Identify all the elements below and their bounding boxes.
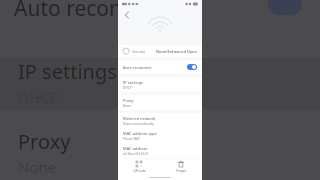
staticText: Forget <box>176 169 186 173</box>
staticText: None <box>123 104 132 108</box>
staticText: Auto reconnect <box>14 0 165 23</box>
staticText: Phone MAC <box>123 137 141 141</box>
staticText: MAC address <box>123 146 148 151</box>
button[interactable]: MAC address type <box>118 128 202 143</box>
staticText: DHCP <box>123 86 132 90</box>
staticText: Metered network <box>123 116 156 121</box>
staticText: MAC address type <box>123 131 157 136</box>
staticText: QR code <box>133 169 146 173</box>
staticText: Auto reconnect <box>123 65 152 70</box>
staticText: None <box>18 157 57 177</box>
staticText: IP settings <box>18 58 117 85</box>
staticText: b2:9a:ee:02:f3:21 <box>123 152 149 156</box>
staticText: Proxy <box>18 128 71 155</box>
staticText: Security <box>132 49 146 54</box>
button[interactable]: IP settings <box>118 77 202 92</box>
button[interactable]: QR code <box>118 159 160 175</box>
staticText: Proxy <box>123 98 134 103</box>
button[interactable]: Forget <box>160 159 202 175</box>
button[interactable]: Back <box>121 9 132 20</box>
staticText: Detect automatically <box>123 122 154 126</box>
button[interactable]: Proxy <box>118 95 202 110</box>
staticText: IP settings <box>123 80 143 85</box>
button[interactable]: MAC address <box>118 143 202 158</box>
button[interactable]: Metered network <box>118 113 202 128</box>
button[interactable]: Auto reconnect <box>118 60 202 74</box>
button[interactable]: Security <box>118 45 202 57</box>
staticText: None/Enhanced Open <box>156 49 197 54</box>
